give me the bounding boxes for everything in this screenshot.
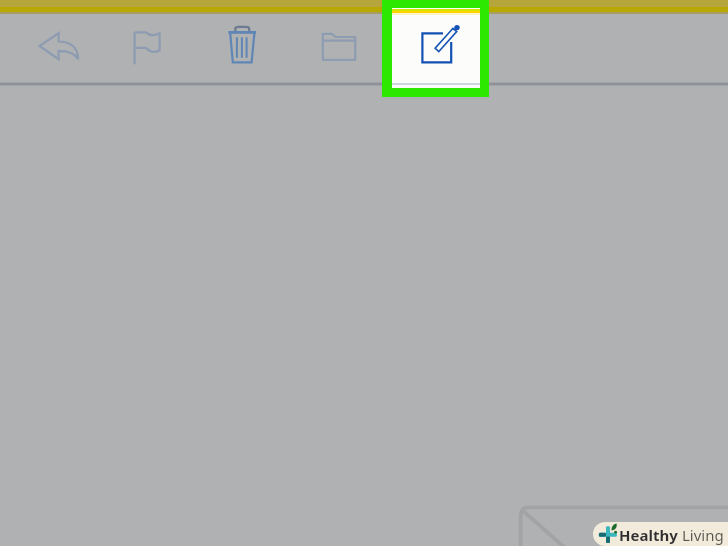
staticText: Living [682,525,724,545]
button[interactable]: Delete [208,13,278,73]
staticText: Healthy [619,525,678,545]
button[interactable]: Compose [392,8,480,88]
button[interactable]: Flag [113,19,183,79]
button[interactable]: Folder [305,18,375,78]
button[interactable]: Reply [21,19,99,79]
